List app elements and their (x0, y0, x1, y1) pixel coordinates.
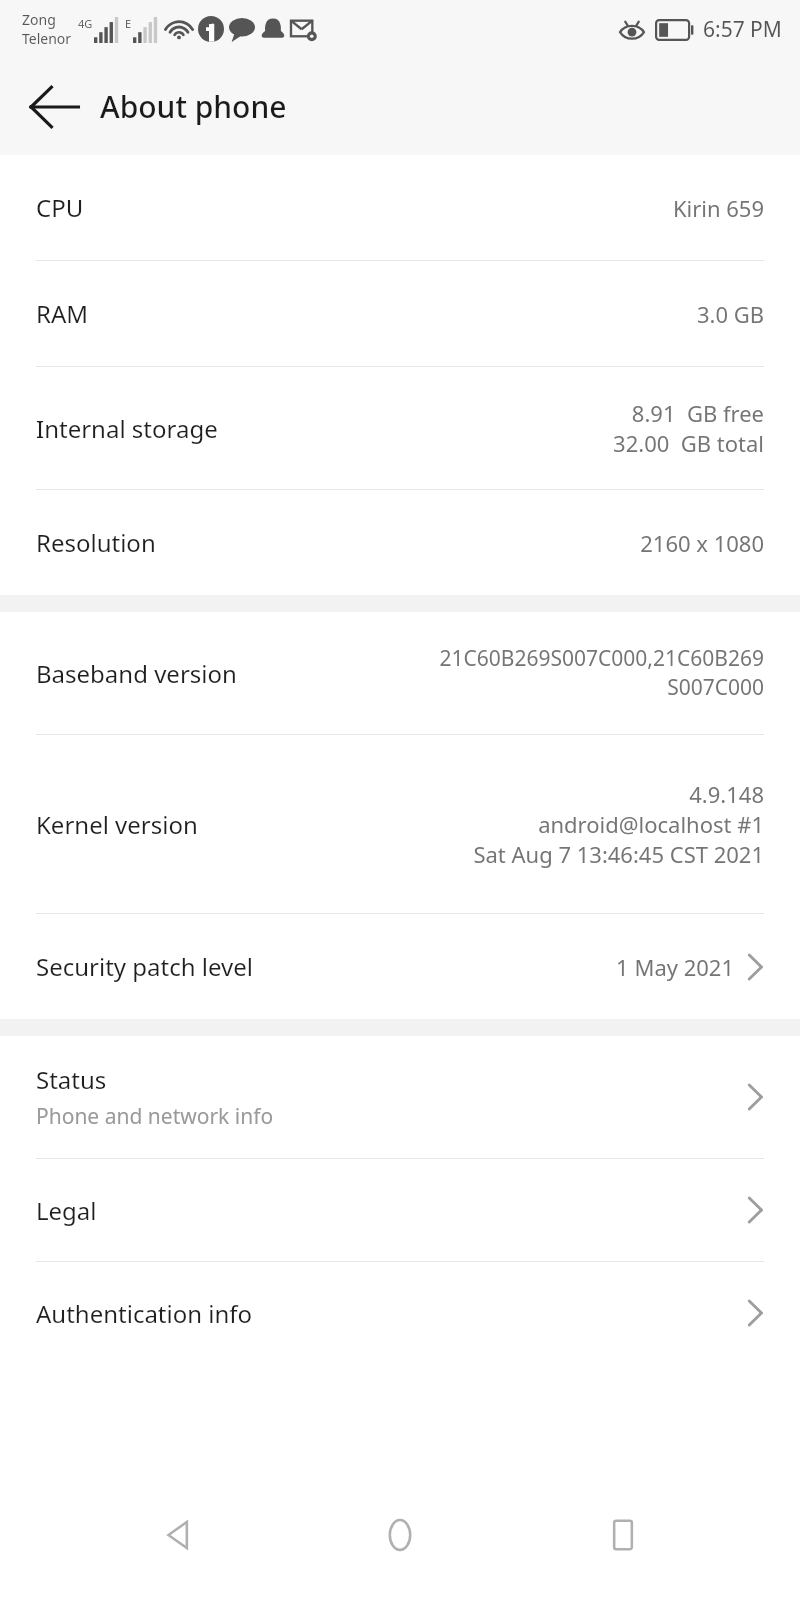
button[interactable]: Back (20, 73, 88, 141)
staticText: 2160 x 1080 (640, 528, 764, 558)
button[interactable]: Legal (0, 1159, 800, 1261)
staticText: RAM (36, 297, 89, 330)
button[interactable]: Status (0, 1036, 800, 1158)
staticText: 32.00 GB total (613, 428, 764, 458)
staticText: Internal storage (36, 412, 218, 445)
staticText: E (125, 16, 132, 31)
button[interactable]: Recent apps (578, 1490, 668, 1580)
staticText: 21C60B269S007C000,21C60B269 (439, 644, 764, 673)
staticText: Status (36, 1063, 107, 1096)
staticText: Resolution (36, 526, 156, 559)
staticText: About phone (100, 86, 287, 127)
button[interactable]: Back (133, 1490, 223, 1580)
button[interactable]: CPU (0, 155, 800, 260)
button[interactable]: Authentication info (0, 1262, 800, 1364)
staticText: 4G (78, 16, 93, 31)
staticText: Telenor (22, 29, 72, 48)
button[interactable]: Baseband version (0, 612, 800, 734)
staticText: android@localhost #1 (538, 809, 764, 839)
button[interactable]: RAM (0, 261, 800, 366)
staticText: 4.9.148 (689, 779, 764, 809)
staticText: 8.91 GB free (631, 398, 764, 428)
staticText: 3.0 GB (696, 299, 764, 329)
staticText: Kirin 659 (672, 193, 764, 223)
staticText: Legal (36, 1194, 97, 1227)
button[interactable]: Internal storage (0, 367, 800, 489)
button[interactable]: Home (355, 1490, 445, 1580)
staticText: Security patch level (36, 950, 253, 983)
staticText: 6:57 PM (703, 15, 782, 44)
staticText: Phone and network info (36, 1102, 274, 1131)
button[interactable]: Resolution (0, 490, 800, 595)
staticText: Baseband version (36, 657, 237, 690)
staticText: 1 May 2021 (616, 952, 734, 982)
staticText: S007C000 (667, 673, 764, 702)
button[interactable]: Kernel version (0, 735, 800, 913)
staticText: Zong (22, 10, 56, 29)
staticText: Authentication info (36, 1297, 253, 1330)
staticText: Kernel version (36, 808, 198, 841)
button[interactable]: Security patch level (0, 914, 800, 1019)
staticText: Sat Aug 7 13:46:45 CST 2021 (473, 839, 764, 869)
staticText: CPU (36, 191, 84, 224)
